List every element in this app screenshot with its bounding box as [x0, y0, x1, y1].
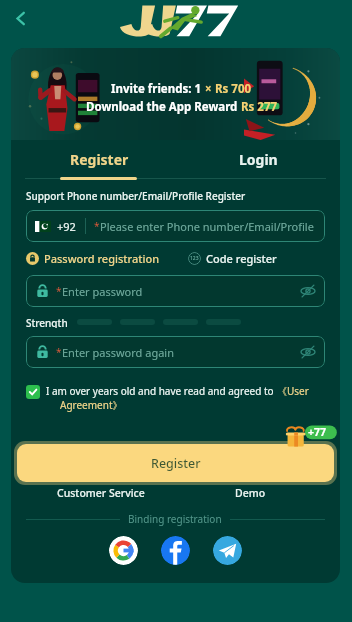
- staticText: *: [94, 219, 100, 233]
- button[interactable]: Demo: [175, 486, 325, 500]
- staticText: Support Phone number/Email/Profile Regis…: [26, 189, 246, 203]
- staticText: Enter password again: [62, 345, 174, 360]
- button[interactable]: Password registration: [26, 251, 160, 266]
- staticText: Customer Service: [57, 486, 145, 500]
- button[interactable]: Back: [4, 2, 36, 34]
- button[interactable]: Customer Service: [26, 486, 175, 500]
- button[interactable]: 123: [188, 251, 277, 266]
- staticText: Agreement》: [60, 398, 123, 412]
- button[interactable]: Register: [17, 444, 334, 482]
- staticText: I am over years old and have read and ag…: [46, 384, 277, 398]
- staticText: 123: [190, 255, 199, 262]
- staticText: +92: [57, 219, 76, 234]
- staticText: 《User: [277, 384, 309, 398]
- button[interactable]: Google: [109, 536, 138, 565]
- button[interactable]: +92: [26, 210, 325, 242]
- button[interactable]: Show password: [301, 284, 315, 298]
- button[interactable]: *: [26, 275, 325, 307]
- button[interactable]: Telegram: [213, 536, 242, 565]
- button[interactable]: Show password: [301, 345, 315, 359]
- button[interactable]: Login: [175, 140, 340, 180]
- staticText: Login: [239, 150, 278, 169]
- staticText: Please enter Phone number/Email/Profile: [100, 219, 314, 234]
- button[interactable]: [26, 385, 40, 399]
- staticText: +77: [308, 425, 327, 439]
- staticText: Demo: [235, 486, 266, 500]
- button[interactable]: Facebook: [161, 536, 190, 565]
- staticText: Password registration: [44, 251, 160, 266]
- staticText: Enter password: [62, 284, 143, 299]
- staticText: Register: [70, 150, 129, 169]
- staticText: *: [56, 345, 62, 359]
- button[interactable]: Register: [11, 140, 175, 180]
- staticText: Rs 700: [215, 81, 252, 97]
- staticText: Download the App Reward: [86, 99, 241, 115]
- staticText: ×: [202, 81, 215, 97]
- staticText: Invite friends: 1: [111, 81, 202, 97]
- staticText: Code register: [206, 251, 277, 266]
- staticText: Rs 277: [241, 99, 278, 115]
- staticText: Binding registration: [128, 512, 222, 526]
- staticText: Register: [151, 455, 201, 472]
- button[interactable]: *: [26, 336, 325, 368]
- staticText: *: [56, 284, 62, 298]
- staticText: Strength: [26, 316, 68, 328]
